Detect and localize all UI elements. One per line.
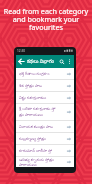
button[interactable]: Bookmark	[66, 159, 72, 165]
staticText: పారాయణం	[19, 163, 37, 167]
button[interactable]: Bookmark	[66, 148, 72, 154]
staticText: ఆదిత్య హృదయ స్తోత్రం	[19, 157, 55, 163]
staticText: సుబ్రహ్మణ్య స్తోత్రం	[19, 136, 46, 142]
staticText: శ్రీ లలితా సహస్రనామ స్తో	[19, 106, 56, 112]
staticText: భక్తి గీతాలు సంగ్రహం	[19, 71, 50, 77]
staticText: కథలు విభాగం	[27, 58, 55, 66]
staticText: 12:30	[17, 49, 26, 53]
button[interactable]: హనుమాన్ చాలీసా స్తో	[16, 145, 74, 156]
staticText: విష్ణు సహస్రనామం	[19, 95, 47, 101]
staticText: Read from each category and bookmark you…	[0, 8, 92, 32]
button[interactable]: Back	[17, 57, 26, 66]
button[interactable]: Search	[58, 58, 66, 66]
staticText: త్రం పారాయణం	[19, 112, 43, 118]
button[interactable]: Bookmark	[66, 124, 72, 130]
staticText: హనుమాన్ చాలీసా స్తో	[19, 148, 53, 154]
button[interactable]: Bookmark	[66, 71, 72, 77]
button[interactable]: వినాయక మంత్రం పాట	[16, 121, 74, 132]
button[interactable]: విష్ణు సహస్రనామం	[16, 92, 74, 103]
button[interactable]: Bookmark	[66, 136, 72, 142]
staticText: శివ స్తోత్రం పాట	[19, 83, 42, 89]
button[interactable]: More options	[66, 58, 73, 65]
button[interactable]: Bookmark	[66, 95, 72, 101]
button[interactable]: Bookmark	[66, 83, 72, 89]
staticText: వినాయక మంత్రం పాట	[19, 124, 53, 130]
button[interactable]: శ్రీ లలితా సహస్రనామ స్తో	[16, 104, 74, 120]
button[interactable]: Bookmark	[66, 109, 72, 115]
button[interactable]: సుబ్రహ్మణ్య స్తోత్రం	[16, 133, 74, 144]
button[interactable]: ఆదిత్య హృదయ స్తోత్రం	[16, 157, 74, 167]
button[interactable]: శివ స్తోత్రం పాట	[16, 80, 74, 91]
button[interactable]: భక్తి గీతాలు సంగ్రహం	[16, 68, 74, 79]
